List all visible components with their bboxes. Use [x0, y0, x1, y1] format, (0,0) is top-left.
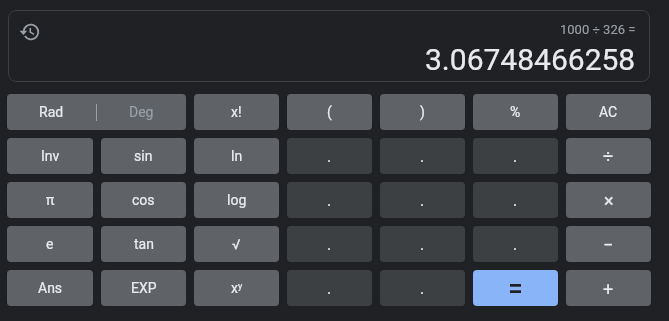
staticText: % [510, 104, 521, 120]
staticText: e [46, 236, 54, 252]
button[interactable]: π [7, 182, 93, 218]
button[interactable]: . [287, 226, 372, 262]
staticText: . [513, 235, 518, 254]
staticText: tan [134, 236, 154, 252]
staticText: ( [327, 104, 332, 120]
button[interactable]: ) [380, 94, 465, 130]
button[interactable]: ln [194, 138, 279, 174]
staticText: . [327, 235, 332, 254]
button[interactable]: + [566, 270, 651, 306]
button[interactable]: . [287, 182, 372, 218]
staticText: xy [231, 280, 243, 296]
staticText: Deg [129, 104, 154, 120]
staticText: ln [231, 148, 243, 164]
button[interactable]: sin [101, 138, 186, 174]
button[interactable]: cos [101, 182, 186, 218]
button[interactable]: . [473, 226, 558, 262]
button[interactable]: Rad [7, 94, 96, 130]
button[interactable]: . [380, 226, 465, 262]
staticText: AC [599, 104, 618, 120]
staticText: . [420, 191, 425, 210]
button[interactable]: . [380, 182, 465, 218]
staticText: cos [132, 192, 155, 208]
staticText: − [603, 234, 614, 255]
button[interactable]: Deg [97, 94, 186, 130]
staticText: . [420, 147, 425, 166]
staticText: ) [420, 104, 425, 120]
button[interactable]: . [473, 182, 558, 218]
staticText: . [513, 191, 518, 210]
staticText: ÷ [603, 146, 614, 167]
button[interactable]: e [7, 226, 93, 262]
staticText: π [46, 192, 55, 208]
staticText: √ [232, 236, 241, 252]
button[interactable]: × [566, 182, 651, 218]
button[interactable]: . [287, 270, 372, 306]
button[interactable]: Equals [473, 270, 558, 306]
staticText: Ans [38, 280, 63, 296]
button[interactable]: x! [194, 94, 279, 130]
staticText: . [513, 147, 518, 166]
staticText: × [604, 190, 614, 211]
button[interactable]: log [194, 182, 279, 218]
staticText: x! [231, 104, 242, 120]
button[interactable]: √ [194, 226, 279, 262]
button[interactable]: . [473, 138, 558, 174]
button[interactable]: Ans [7, 270, 93, 306]
button[interactable]: ( [287, 94, 372, 130]
button[interactable]: History [19, 21, 41, 43]
staticText: EXP [131, 280, 157, 296]
button[interactable]: % [473, 94, 558, 130]
staticText: log [227, 192, 247, 208]
staticText: Inv [41, 148, 60, 164]
staticText: 3.06748466258 [425, 42, 636, 77]
button[interactable]: . [287, 138, 372, 174]
staticText: sin [134, 148, 153, 164]
staticText: 1000 ÷ 326 = [560, 22, 636, 37]
button[interactable]: EXP [101, 270, 186, 306]
staticText: . [420, 279, 425, 298]
button[interactable]: − [566, 226, 651, 262]
staticText: . [327, 191, 332, 210]
button[interactable]: ÷ [566, 138, 651, 174]
staticText: . [327, 279, 332, 298]
staticText: Rad [39, 104, 64, 120]
button[interactable]: Inv [7, 138, 93, 174]
staticText: . [420, 235, 425, 254]
button[interactable]: . [380, 138, 465, 174]
button[interactable]: . [380, 270, 465, 306]
button[interactable]: xy [194, 270, 279, 306]
staticText: . [327, 147, 332, 166]
button[interactable]: tan [101, 226, 186, 262]
staticText: + [603, 278, 614, 299]
button[interactable]: AC [566, 94, 651, 130]
